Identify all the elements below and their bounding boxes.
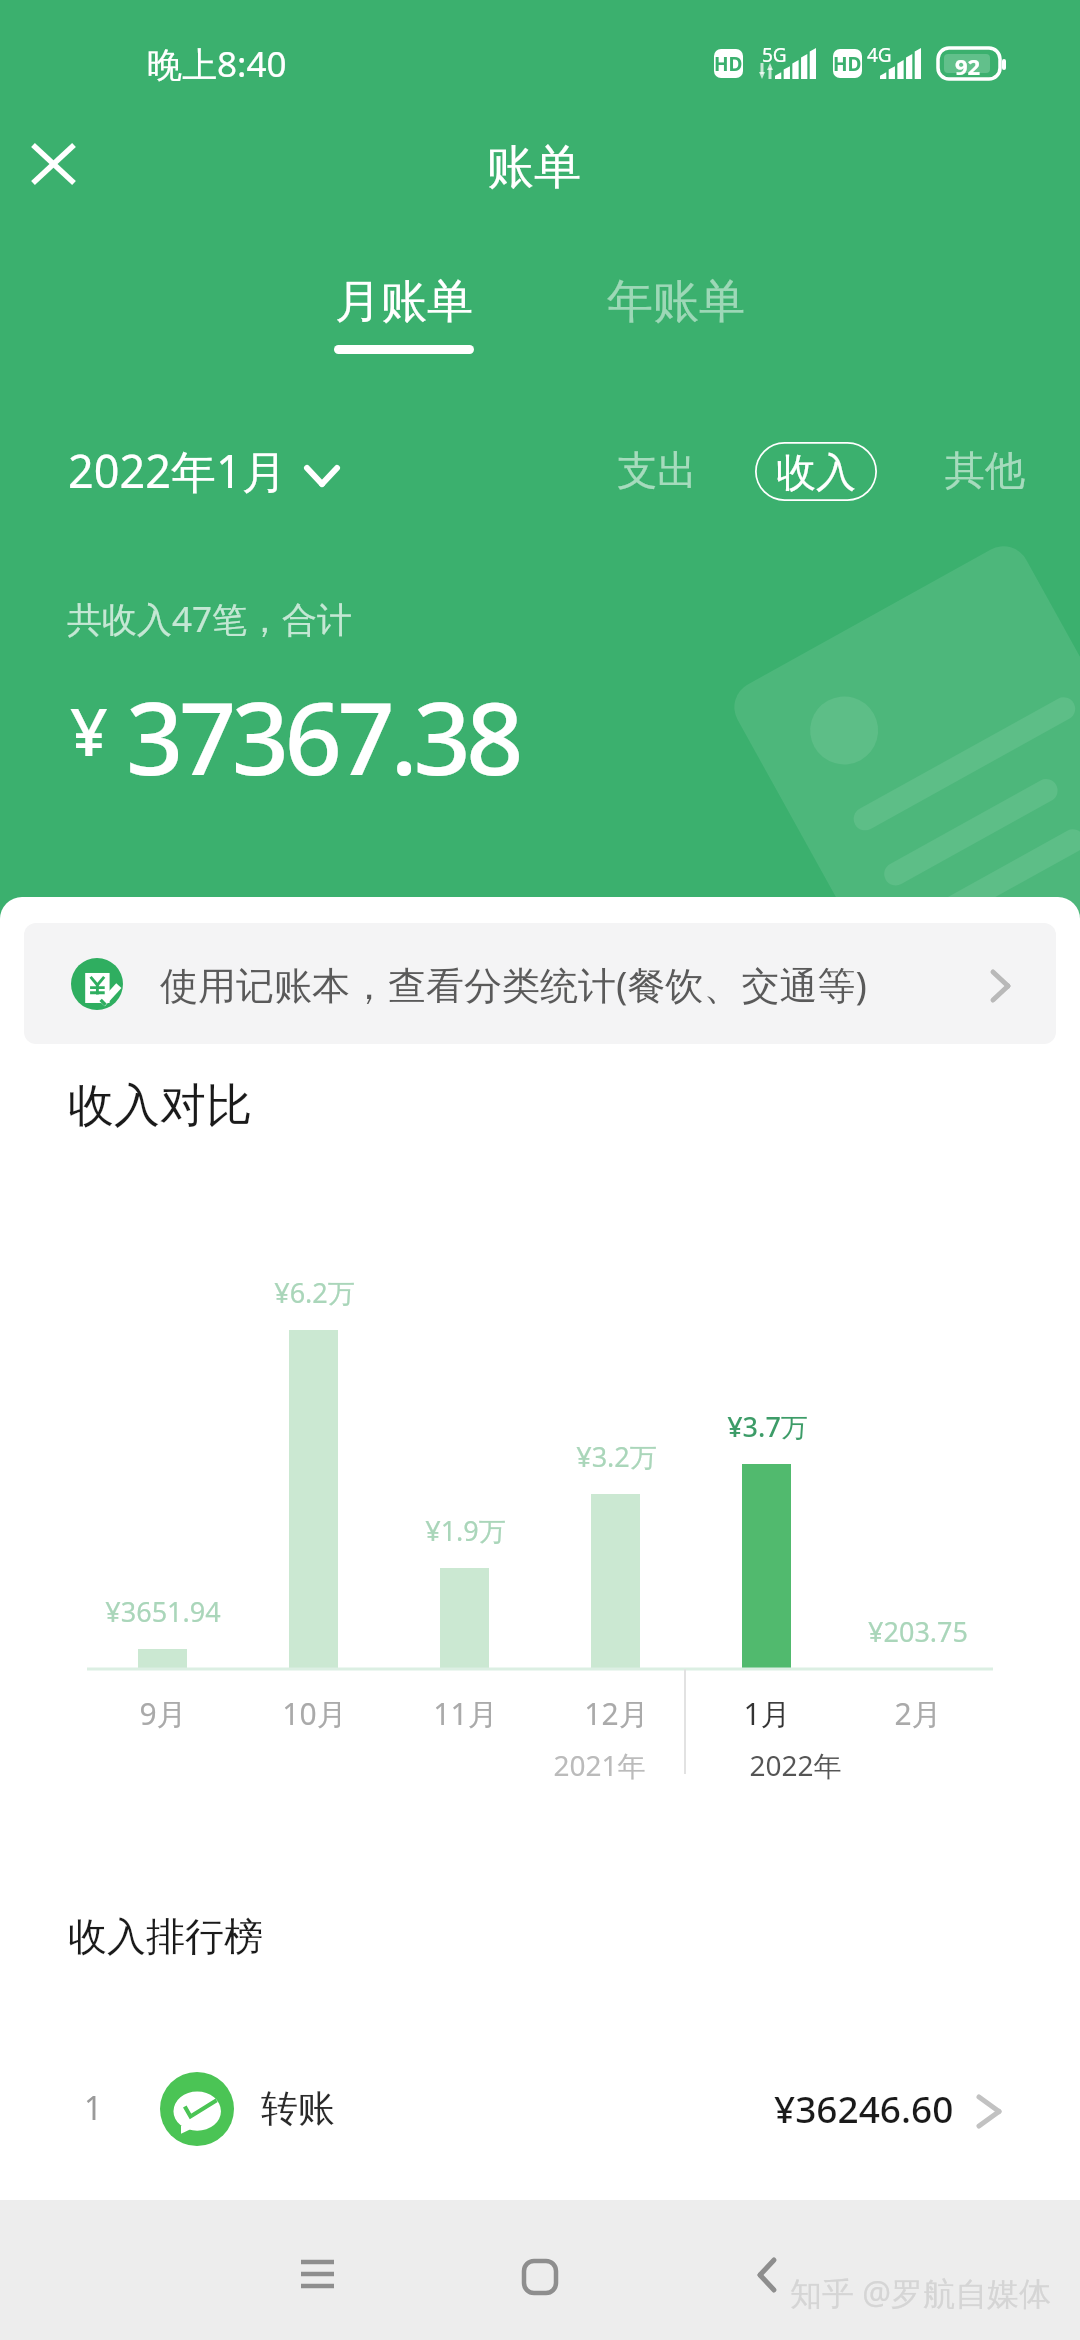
staticText: 晚上8:40 [147, 40, 287, 88]
staticText: ¥3651.94 [105, 1593, 221, 1630]
staticText: HD [833, 51, 862, 77]
staticText: HD [714, 51, 743, 77]
staticText: 年账单 [607, 273, 745, 331]
staticText: 9月 [139, 1693, 187, 1734]
button[interactable]: 使用记账本，查看分类统计(餐饮、交通等) [24, 923, 1056, 1044]
staticText: 支出 [617, 445, 697, 495]
button[interactable]: Back [707, 2205, 827, 2340]
staticText: 月账单 [335, 273, 473, 331]
staticText: 12月 [584, 1693, 649, 1734]
button[interactable]: 月账单 [321, 273, 487, 354]
staticText: 2月 [894, 1693, 942, 1734]
staticText: 收入 [776, 447, 856, 497]
staticText: 2021年 [553, 1746, 646, 1784]
staticText: 10月 [282, 1693, 347, 1734]
staticText: 2022年 [749, 1746, 842, 1784]
button[interactable]: 支出 [609, 437, 705, 503]
staticText: 5G [762, 42, 787, 68]
staticText: ¥6.2万 [274, 1274, 355, 1311]
button[interactable]: 年账单 [593, 273, 759, 354]
button[interactable]: 收入 [755, 442, 877, 501]
staticText: 其他 [945, 445, 1025, 495]
staticText: 使用记账本，查看分类统计(餐饮、交通等) [160, 958, 867, 1010]
button[interactable]: Recents [257, 2204, 377, 2340]
staticText: 37367.38 [126, 668, 520, 804]
staticText: 1 [84, 2086, 103, 2130]
button[interactable]: 2022年1月 [62, 440, 345, 501]
staticText: 账单 [487, 138, 581, 197]
staticText: ¥3.2万 [576, 1438, 657, 1475]
staticText: ¥ [70, 685, 108, 775]
button[interactable]: Close [17, 128, 89, 200]
button[interactable]: Home [480, 2207, 600, 2340]
staticText: ¥203.75 [868, 1613, 968, 1650]
staticText: 知乎 @罗航自媒体 [790, 2271, 1052, 2315]
staticText: 92 [955, 51, 981, 81]
staticText: ¥36246.60 [774, 2083, 954, 2133]
staticText: 4G [867, 42, 892, 68]
staticText: 收入对比 [68, 1077, 252, 1135]
staticText: 2022年1月 [68, 440, 287, 501]
button[interactable]: 其他 [937, 437, 1033, 503]
staticText: 收入排行榜 [68, 1912, 263, 1961]
staticText: 转账 [261, 2085, 335, 2132]
staticText: 11月 [433, 1693, 498, 1734]
staticText: ¥1.9万 [425, 1512, 506, 1549]
staticText: ¥3.7万 [727, 1408, 808, 1445]
staticText: 共收入47笔，合计 [67, 595, 353, 643]
button[interactable]: 1 [0, 2047, 1080, 2169]
staticText: 1月 [743, 1693, 791, 1734]
